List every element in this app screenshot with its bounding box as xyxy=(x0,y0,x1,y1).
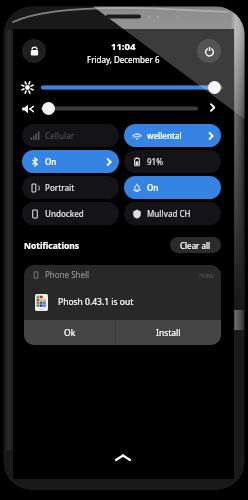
staticText: now xyxy=(199,270,214,280)
button[interactable]: Volume xyxy=(42,102,55,115)
button[interactable]: Phone Shell xyxy=(24,265,221,345)
staticText: Ok xyxy=(64,327,76,339)
button[interactable]: Portrait xyxy=(22,176,119,199)
button[interactable]: Brightness xyxy=(208,81,221,94)
button[interactable]: Clear all xyxy=(170,237,221,253)
button[interactable]: wellental xyxy=(124,124,221,147)
button[interactable]: Undocked xyxy=(22,202,119,225)
staticText: Portrait xyxy=(45,182,113,193)
button[interactable]: Lock screen xyxy=(22,39,46,63)
staticText: Phosh 0.43.1 is out xyxy=(58,296,134,308)
staticText: On xyxy=(147,182,215,193)
button[interactable]: Cellular xyxy=(22,124,119,147)
staticText: On xyxy=(45,156,99,167)
staticText: Install xyxy=(156,327,181,339)
button[interactable]: 91% xyxy=(124,150,221,173)
button[interactable]: On xyxy=(22,150,119,173)
staticText: 91% xyxy=(147,156,215,167)
staticText: Phone Shell xyxy=(45,269,90,280)
staticText: Undocked xyxy=(45,208,113,219)
button[interactable]: Ok xyxy=(24,320,115,345)
staticText: Notifications xyxy=(24,240,80,252)
button[interactable]: Sound settings xyxy=(203,98,221,116)
staticText: wellental xyxy=(147,130,201,141)
staticText: Cellular xyxy=(45,130,113,141)
button[interactable]: On xyxy=(124,176,221,199)
staticText: Friday, December 6 xyxy=(87,54,160,65)
staticText: 11:04 xyxy=(111,40,136,53)
staticText: Clear all xyxy=(180,240,211,251)
button[interactable]: Mullvad CH xyxy=(124,202,221,225)
button[interactable]: Power xyxy=(197,39,221,63)
staticText: Mullvad CH xyxy=(147,208,215,219)
button[interactable]: Show more xyxy=(111,448,135,466)
button[interactable]: Install xyxy=(116,320,221,345)
